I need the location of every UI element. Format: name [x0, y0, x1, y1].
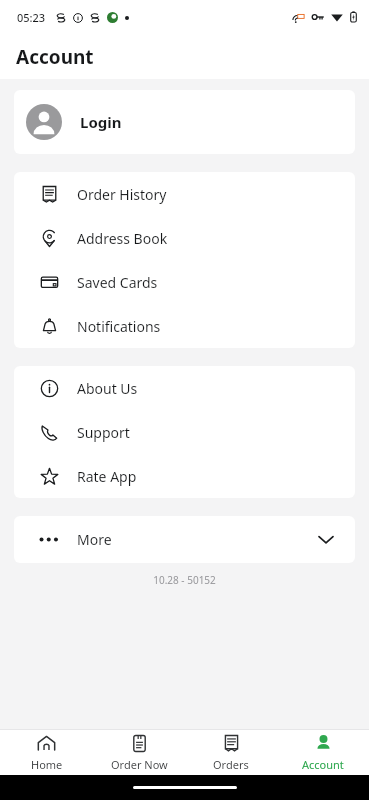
- staticText: Rate App: [77, 467, 137, 486]
- staticText: Login: [80, 112, 122, 132]
- staticText: Saved Cards: [77, 273, 158, 292]
- button[interactable]: Order Now: [93, 730, 185, 775]
- button[interactable]: Account: [277, 730, 369, 775]
- button[interactable]: Notifications: [14, 304, 355, 348]
- staticText: Support: [77, 423, 130, 442]
- button[interactable]: About Us: [14, 366, 355, 410]
- button[interactable]: Orders: [185, 730, 277, 775]
- button[interactable]: Rate App: [14, 454, 355, 498]
- staticText: Account: [302, 757, 344, 772]
- button[interactable]: Home: [0, 730, 93, 775]
- button[interactable]: More: [14, 516, 355, 563]
- staticText: Account: [16, 44, 94, 70]
- button[interactable]: Address Book: [14, 216, 355, 260]
- staticText: 05:23: [17, 10, 46, 25]
- button[interactable]: Login: [14, 90, 355, 154]
- staticText: Order History: [77, 185, 167, 204]
- staticText: More: [77, 530, 319, 549]
- staticText: Orders: [213, 757, 249, 772]
- button[interactable]: Saved Cards: [14, 260, 355, 304]
- staticText: About Us: [77, 379, 138, 398]
- staticText: Notifications: [77, 317, 161, 336]
- staticText: Order Now: [111, 757, 168, 772]
- button[interactable]: Order History: [14, 172, 355, 216]
- staticText: Home: [31, 757, 63, 772]
- button[interactable]: Support: [14, 410, 355, 454]
- staticText: Address Book: [77, 229, 168, 248]
- staticText: 10.28 - 50152: [0, 573, 369, 587]
